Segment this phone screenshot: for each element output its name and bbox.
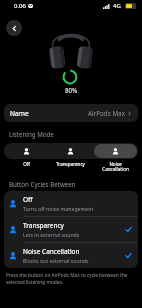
button[interactable]: Off	[4, 191, 138, 216]
staticText: Transparency	[23, 221, 64, 230]
staticText: Press the button on AirPods Max to cycle…	[6, 272, 128, 286]
button[interactable]: Transparency	[4, 217, 138, 242]
staticText: Lets in external sounds	[23, 231, 80, 238]
button[interactable]: Mode	[49, 144, 92, 158]
staticText: Transparency	[56, 161, 85, 167]
staticText: Turns off noise management	[23, 205, 94, 212]
staticText: Listening Mode	[9, 130, 54, 138]
staticText: Blocks out external sounds	[23, 257, 89, 264]
staticText: Noise Cancellation	[102, 161, 129, 173]
button[interactable]: Name	[4, 104, 138, 122]
button[interactable]: Back	[6, 20, 22, 36]
staticText: Off	[23, 195, 33, 204]
button[interactable]: Mode	[5, 144, 47, 158]
staticText: Button Cycles Between	[9, 180, 76, 188]
staticText: 4G	[113, 2, 121, 10]
staticText: Off	[23, 161, 30, 167]
staticText: Noise Cancellation	[23, 247, 80, 256]
staticText: Name	[10, 109, 29, 118]
staticText: 80%	[65, 86, 78, 94]
staticText: AirPods Max	[88, 109, 125, 118]
staticText: 0.06	[14, 2, 26, 10]
button[interactable]: Noise Cancellation	[94, 144, 137, 158]
button[interactable]: Noise Cancellation	[4, 243, 138, 268]
